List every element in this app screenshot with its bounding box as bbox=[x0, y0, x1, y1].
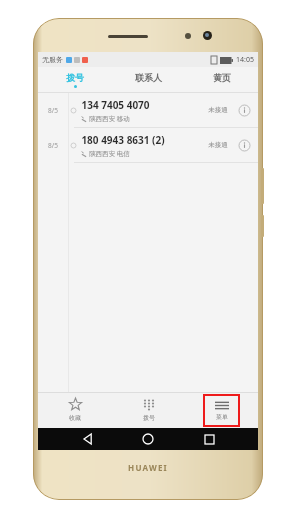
staticText: 联系人 bbox=[135, 72, 162, 83]
button[interactable]: Call details bbox=[234, 100, 254, 120]
staticText: 8/5 bbox=[48, 106, 58, 115]
button[interactable]: Home bbox=[137, 428, 159, 450]
staticText: 未接通 bbox=[208, 141, 228, 149]
staticText: 未接通 bbox=[208, 106, 228, 114]
staticText: 陕西西安 移动 bbox=[89, 114, 130, 123]
staticText: 陕西西安 电信 bbox=[89, 149, 130, 158]
staticText: 黄页 bbox=[213, 72, 231, 83]
button[interactable]: 拨号 bbox=[38, 67, 112, 93]
button[interactable]: Recents bbox=[198, 428, 220, 450]
button[interactable]: 收藏 bbox=[38, 392, 112, 428]
staticText: 无服务 bbox=[42, 55, 63, 64]
button[interactable]: Back bbox=[77, 428, 99, 450]
staticText: HUAWEI bbox=[128, 462, 168, 473]
staticText: 8/5 bbox=[48, 141, 58, 150]
staticText: 14:05 bbox=[236, 55, 254, 65]
staticText: 菜单 bbox=[216, 413, 228, 421]
button[interactable]: 黄页 bbox=[185, 67, 258, 93]
staticText: 拨号 bbox=[143, 414, 155, 422]
staticText: 收藏 bbox=[69, 414, 81, 422]
staticText: 拨号 bbox=[66, 72, 84, 83]
staticText: 134 7405 4070 bbox=[81, 98, 150, 112]
button[interactable]: 联系人 bbox=[112, 67, 185, 93]
button[interactable]: 拨号 bbox=[112, 392, 185, 428]
button[interactable]: 8/5 bbox=[38, 93, 258, 128]
staticText: 180 4943 8631 (2) bbox=[81, 133, 165, 147]
button[interactable]: Menu bbox=[203, 394, 240, 427]
button[interactable]: Call details bbox=[234, 135, 254, 155]
button[interactable]: 8/5 bbox=[38, 128, 258, 163]
